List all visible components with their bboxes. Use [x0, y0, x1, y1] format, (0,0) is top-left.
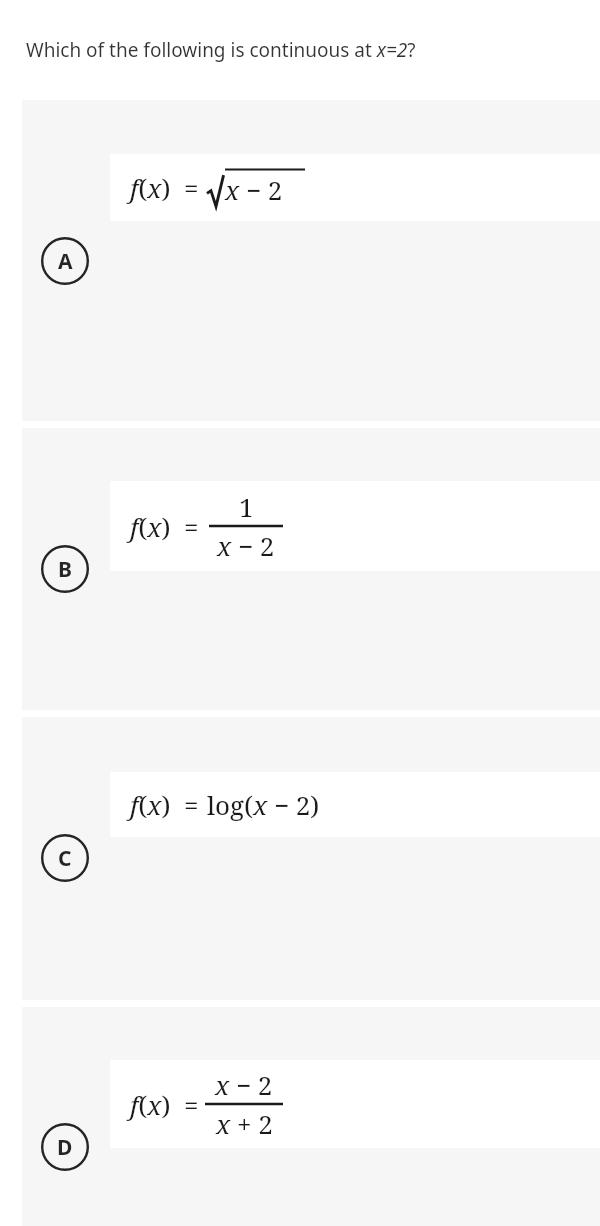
button[interactable]: Option D — [41, 1123, 89, 1171]
staticText: D — [57, 1133, 73, 1162]
staticText: C — [58, 844, 72, 873]
button[interactable]: Option A — [41, 237, 89, 285]
staticText: Which of the following is continuous at … — [26, 37, 416, 63]
staticText: log(x − 2) — [207, 787, 320, 822]
staticText: x − 2 — [215, 1067, 273, 1102]
button[interactable]: Option C — [41, 834, 89, 882]
button[interactable]: Answer option A — [22, 100, 600, 421]
staticText: x − 2 — [217, 528, 275, 563]
staticText: x + 2 — [216, 1106, 273, 1141]
staticText: f(x) = — [130, 787, 199, 822]
staticText: f(x) = — [130, 1087, 199, 1122]
staticText: f(x) = — [130, 509, 199, 544]
staticText: x − 2 — [225, 172, 283, 207]
button[interactable]: Answer option D — [22, 1007, 600, 1226]
staticText: B — [58, 555, 72, 584]
button[interactable]: Answer option B — [22, 428, 600, 710]
button[interactable]: Answer option C — [22, 717, 600, 1000]
staticText: f(x) = — [130, 170, 199, 205]
staticText: 1 — [239, 489, 254, 524]
staticText: A — [58, 247, 73, 276]
button[interactable]: Option B — [41, 545, 89, 593]
